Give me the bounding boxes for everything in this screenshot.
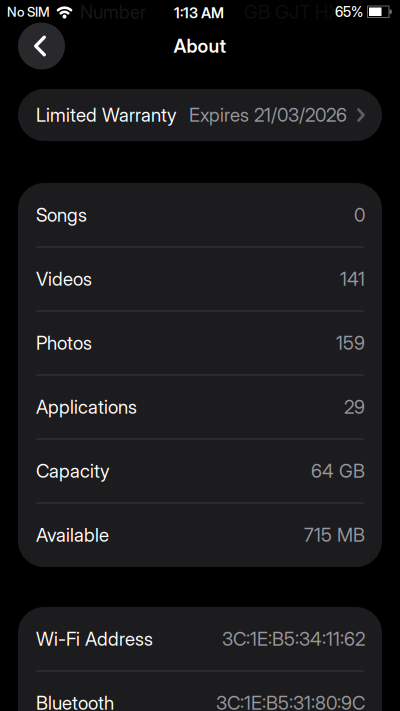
staticText: 3C:1E:B5:34:11:62	[222, 628, 365, 650]
staticText: Songs	[36, 204, 87, 226]
staticText: 65%	[335, 3, 363, 20]
staticText: Photos	[36, 332, 92, 354]
staticText: No SIM	[7, 4, 50, 20]
button[interactable]: Back	[18, 22, 65, 69]
staticText: 0	[354, 204, 365, 226]
staticText: About	[173, 35, 226, 57]
staticText: Applications	[36, 396, 137, 418]
staticText: 715 MB	[304, 524, 365, 546]
staticText: Wi-Fi Address	[36, 628, 153, 650]
staticText: Available	[36, 524, 109, 546]
staticText: 1:13 AM	[174, 4, 224, 22]
staticText: 64 GB	[311, 460, 365, 482]
button[interactable]: Limited Warranty	[18, 89, 382, 141]
staticText: Videos	[36, 268, 92, 290]
staticText: 141	[340, 268, 365, 290]
staticText: Limited Warranty	[36, 104, 177, 126]
staticText: Bluetooth	[36, 692, 114, 711]
staticText: GB GJT HX	[244, 1, 340, 23]
staticText: Expires 21/03/2026	[189, 104, 347, 126]
staticText: Capacity	[36, 460, 110, 482]
staticText: Number	[80, 1, 146, 23]
staticText: 3C:1E:B5:31:80:9C	[216, 692, 365, 711]
staticText: 159	[336, 332, 365, 354]
staticText: 29	[344, 396, 365, 418]
